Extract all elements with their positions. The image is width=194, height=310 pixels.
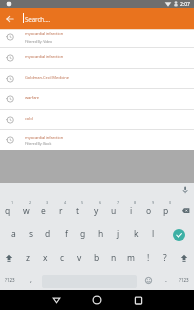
staticText: t [76,205,80,217]
staticText: g [80,228,86,240]
button[interactable]: h [93,222,109,246]
button[interactable]: ?123 [1,270,19,290]
button[interactable]: ?123 [175,270,193,290]
button[interactable] [126,290,150,310]
staticText: Goldman-Cecil Medicine [25,75,69,81]
button[interactable]: e [35,199,51,222]
button[interactable]: , [24,270,38,290]
button[interactable] [178,183,192,196]
staticText: a [11,228,16,240]
button[interactable]: r [53,199,69,222]
staticText: 2 [29,200,32,205]
button[interactable]: u [106,199,122,222]
staticText: f [65,228,68,240]
staticText: 9 [152,200,155,205]
button[interactable]: s [23,222,39,246]
button[interactable]: k [128,222,144,246]
staticText: c [60,252,65,264]
staticText: q [5,205,11,217]
staticText: cold [25,116,33,122]
staticText: . [165,275,167,285]
staticText: ?123 [179,277,189,283]
staticText: p [163,205,169,217]
button[interactable] [175,246,193,270]
button[interactable] [141,270,155,290]
button[interactable]: p [158,199,174,222]
staticText: 0 [169,200,172,205]
button[interactable]: w [18,199,34,222]
button[interactable]: q [0,199,16,222]
staticText: j [117,228,120,240]
staticText: i [130,205,133,217]
staticText: l [152,228,155,240]
button[interactable]: f [58,222,74,246]
button[interactable]: myocardial infarction [0,30,194,48]
staticText: m [127,252,135,264]
staticText: 6 [99,200,102,205]
button[interactable] [167,224,191,246]
button[interactable]: m [123,246,139,270]
staticText: , [30,275,32,285]
button[interactable]: g [75,222,91,246]
staticText: Filtered By: Video [25,39,52,44]
button[interactable]: v [71,246,87,270]
button[interactable]: l [145,222,161,246]
button[interactable] [44,290,68,310]
staticText: u [111,205,117,217]
button[interactable] [0,8,24,29]
staticText: b [94,252,100,264]
staticText: h [98,228,104,240]
staticText: ! [147,252,150,264]
button[interactable]: myocardial infarction [0,129,194,150]
staticText: n [111,252,117,264]
staticText: 3 [46,200,49,205]
staticText: x [43,252,48,264]
staticText: ? [163,252,167,264]
button[interactable]: z [20,246,36,270]
staticText: 4 [64,200,67,205]
button[interactable]: i [123,199,139,222]
button[interactable] [176,199,194,222]
button[interactable]: c [54,246,70,270]
staticText: myocardial infarction [25,31,64,37]
button[interactable]: d [40,222,56,246]
button[interactable]: o [141,199,157,222]
button[interactable]: ! [140,246,156,270]
button[interactable]: a [5,222,21,246]
staticText: 5 [81,200,84,205]
button[interactable]: myocardial infarction [0,47,194,68]
button[interactable]: ? [157,246,173,270]
staticText: myocardial infarction [25,135,64,141]
staticText: e [41,205,46,217]
button[interactable]: y [88,199,104,222]
staticText: y [94,205,99,217]
staticText: myocardial infarction [25,54,64,60]
staticText: 2:07 [180,1,190,8]
button[interactable]: t [70,199,86,222]
staticText: r [59,205,63,217]
staticText: warfare [25,95,39,101]
staticText: v [77,252,82,264]
button[interactable]: cold [0,109,194,130]
button[interactable] [85,290,109,310]
staticText: 8 [134,200,137,205]
staticText: Filtered By: Book [25,141,52,146]
button[interactable]: n [106,246,122,270]
staticText: o [146,205,152,217]
staticText: ?123 [5,277,15,283]
staticText: s [29,228,34,240]
button[interactable]: j [110,222,126,246]
staticText: 1 [11,200,14,205]
button[interactable]: b [89,246,105,270]
button[interactable]: warfare [0,88,194,109]
staticText: d [45,228,51,240]
staticText: k [134,228,139,240]
button[interactable] [0,246,18,270]
staticText: z [26,252,30,264]
staticText: Search.... [25,15,51,24]
button[interactable]: x [37,246,53,270]
button[interactable]: Goldman-Cecil Medicine [0,68,194,89]
button[interactable]: . [160,270,172,290]
staticText: 7 [117,200,120,205]
